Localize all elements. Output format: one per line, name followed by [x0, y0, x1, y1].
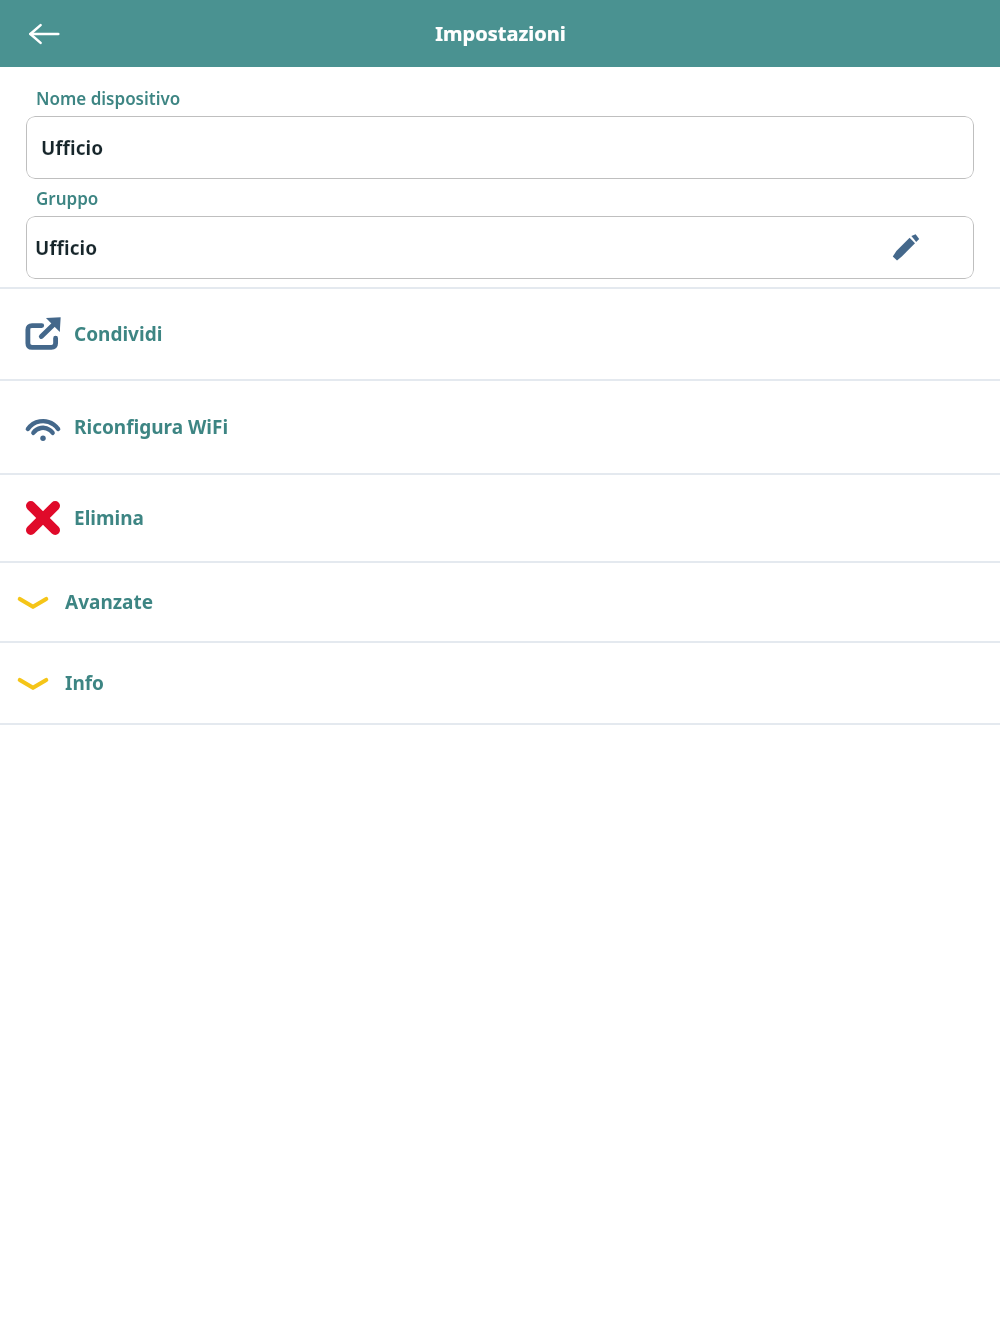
staticText: Impostazioni	[435, 20, 566, 47]
staticText: Ufficio	[35, 235, 98, 261]
staticText: Info	[65, 670, 104, 696]
button[interactable]: Riconfigura WiFi	[0, 381, 1000, 473]
button[interactable]: Condividi	[0, 289, 1000, 379]
button[interactable]: Info	[0, 643, 1000, 723]
button[interactable]: Ufficio	[26, 216, 974, 279]
button[interactable]: Edit group	[886, 228, 926, 268]
button[interactable]: Ufficio	[26, 116, 974, 179]
staticText: Elimina	[74, 505, 144, 531]
staticText: Condividi	[74, 321, 163, 347]
button[interactable]: Elimina	[0, 475, 1000, 561]
staticText: Riconfigura WiFi	[74, 414, 229, 440]
staticText: Ufficio	[41, 135, 104, 161]
staticText: Avanzate	[65, 589, 154, 615]
button[interactable]: Back	[18, 8, 70, 60]
button[interactable]: Avanzate	[0, 563, 1000, 641]
staticText: Gruppo	[36, 187, 99, 210]
staticText: Nome dispositivo	[36, 87, 181, 110]
